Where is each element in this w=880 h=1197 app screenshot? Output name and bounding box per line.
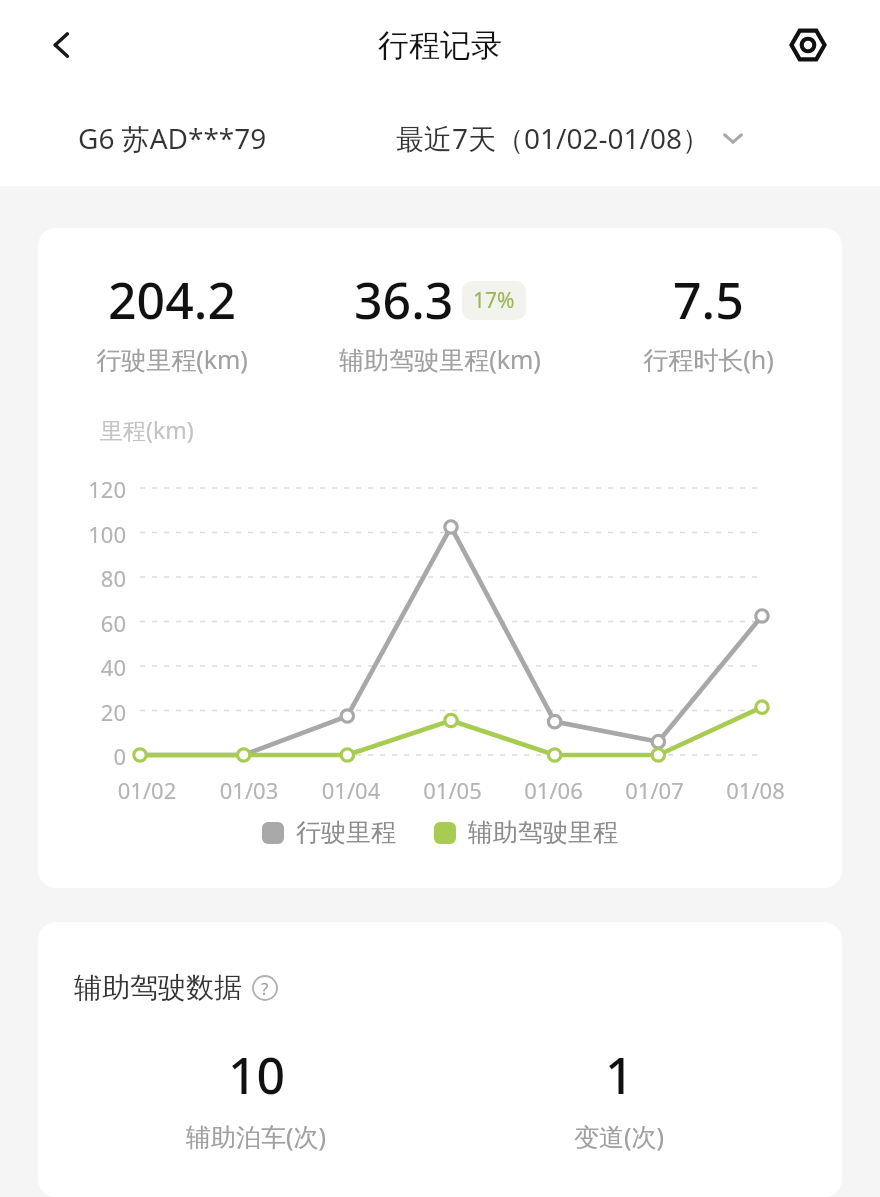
staticText: 10 (228, 1041, 286, 1109)
staticText: 40 (60, 652, 126, 682)
staticText: 里程(km) (100, 414, 194, 445)
staticText: 01/06 (503, 775, 604, 805)
button[interactable]: 行驶里程 (262, 817, 396, 848)
staticText: 辅助驾驶里程 (468, 817, 618, 848)
staticText: 17% (473, 286, 515, 315)
staticText: 行驶里程(km) (96, 342, 248, 376)
staticText: G6 苏AD***79 (78, 119, 267, 157)
staticText: 204.2 (108, 266, 236, 334)
staticText: 01/04 (300, 775, 402, 805)
staticText: 行程时长(h) (643, 342, 774, 376)
staticText: ? (261, 977, 269, 1000)
staticText: 行程记录 (378, 26, 502, 65)
staticText: 01/08 (705, 775, 806, 805)
staticText: 20 (60, 697, 126, 727)
staticText: 辅助驾驶里程(km) (339, 342, 541, 376)
button[interactable]: Help (248, 971, 282, 1005)
staticText: 变道(次) (574, 1119, 665, 1153)
staticText: 最近7天（01/02-01/08） (396, 119, 710, 157)
staticText: 120 (60, 474, 126, 504)
staticText: 01/02 (96, 775, 198, 805)
staticText: 01/05 (402, 775, 503, 805)
staticText: 100 (60, 519, 126, 549)
button[interactable]: 辅助驾驶里程 (434, 817, 618, 848)
button[interactable]: 最近7天（01/02-01/08） (396, 119, 746, 157)
staticText: 0 (60, 741, 126, 771)
button[interactable]: Settings (782, 19, 834, 71)
staticText: 行驶里程 (296, 817, 396, 848)
staticText: 辅助驾驶数据 (74, 970, 242, 1005)
staticText: 1 (605, 1041, 634, 1109)
staticText: 辅助泊车(次) (186, 1119, 327, 1153)
staticText: 36.3 (354, 266, 454, 334)
staticText: 60 (60, 608, 126, 638)
button[interactable]: Back (34, 17, 90, 73)
staticText: 80 (60, 563, 126, 593)
staticText: 7.5 (673, 266, 744, 334)
staticText: 01/07 (604, 775, 705, 805)
staticText: 01/03 (198, 775, 300, 805)
